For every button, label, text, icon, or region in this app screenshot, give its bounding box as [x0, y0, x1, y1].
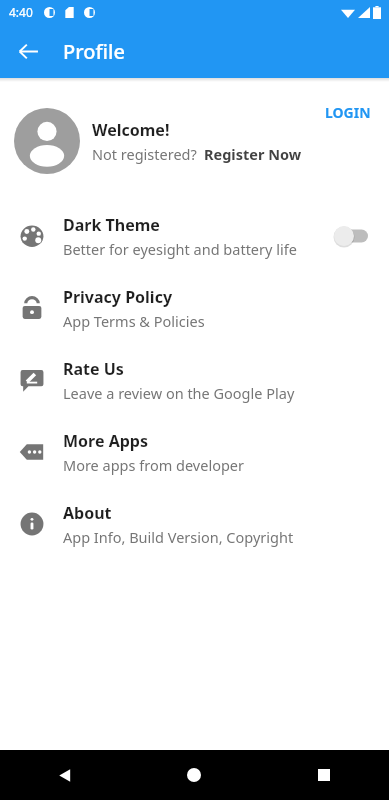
button[interactable]: Back — [0, 750, 129, 800]
button[interactable]: Dark theme toggle — [329, 222, 375, 250]
staticText: Profile — [63, 38, 125, 65]
staticText: App Info, Build Version, Copyright — [63, 527, 294, 547]
staticText: 4:40 — [9, 4, 33, 20]
staticText: Privacy Policy — [63, 286, 173, 308]
button[interactable]: Privacy Policy — [0, 272, 389, 344]
staticText: Better for eyesight and battery life — [63, 239, 297, 259]
button[interactable]: Back — [8, 31, 48, 71]
staticText: App Terms & Policies — [63, 311, 205, 331]
staticText: More apps from developer — [63, 455, 244, 475]
button[interactable]: LOGIN — [321, 100, 375, 125]
button[interactable]: Register Now — [204, 144, 302, 164]
staticText: Rate Us — [63, 358, 124, 380]
staticText: LOGIN — [325, 103, 371, 122]
staticText: Dark Theme — [63, 214, 160, 236]
button[interactable]: About — [0, 488, 389, 560]
staticText: Welcome! — [92, 119, 170, 141]
button[interactable]: Rate Us — [0, 344, 389, 416]
staticText: Leave a review on the Google Play — [63, 383, 295, 403]
button[interactable]: Recent apps — [259, 750, 389, 800]
button[interactable]: Dark Theme — [0, 200, 389, 272]
button[interactable]: More Apps — [0, 416, 389, 488]
button[interactable]: Home — [129, 750, 259, 800]
button[interactable]: Welcome! — [0, 108, 389, 174]
staticText: Not registered? — [92, 144, 197, 164]
staticText: More Apps — [63, 430, 148, 452]
staticText: About — [63, 502, 112, 524]
